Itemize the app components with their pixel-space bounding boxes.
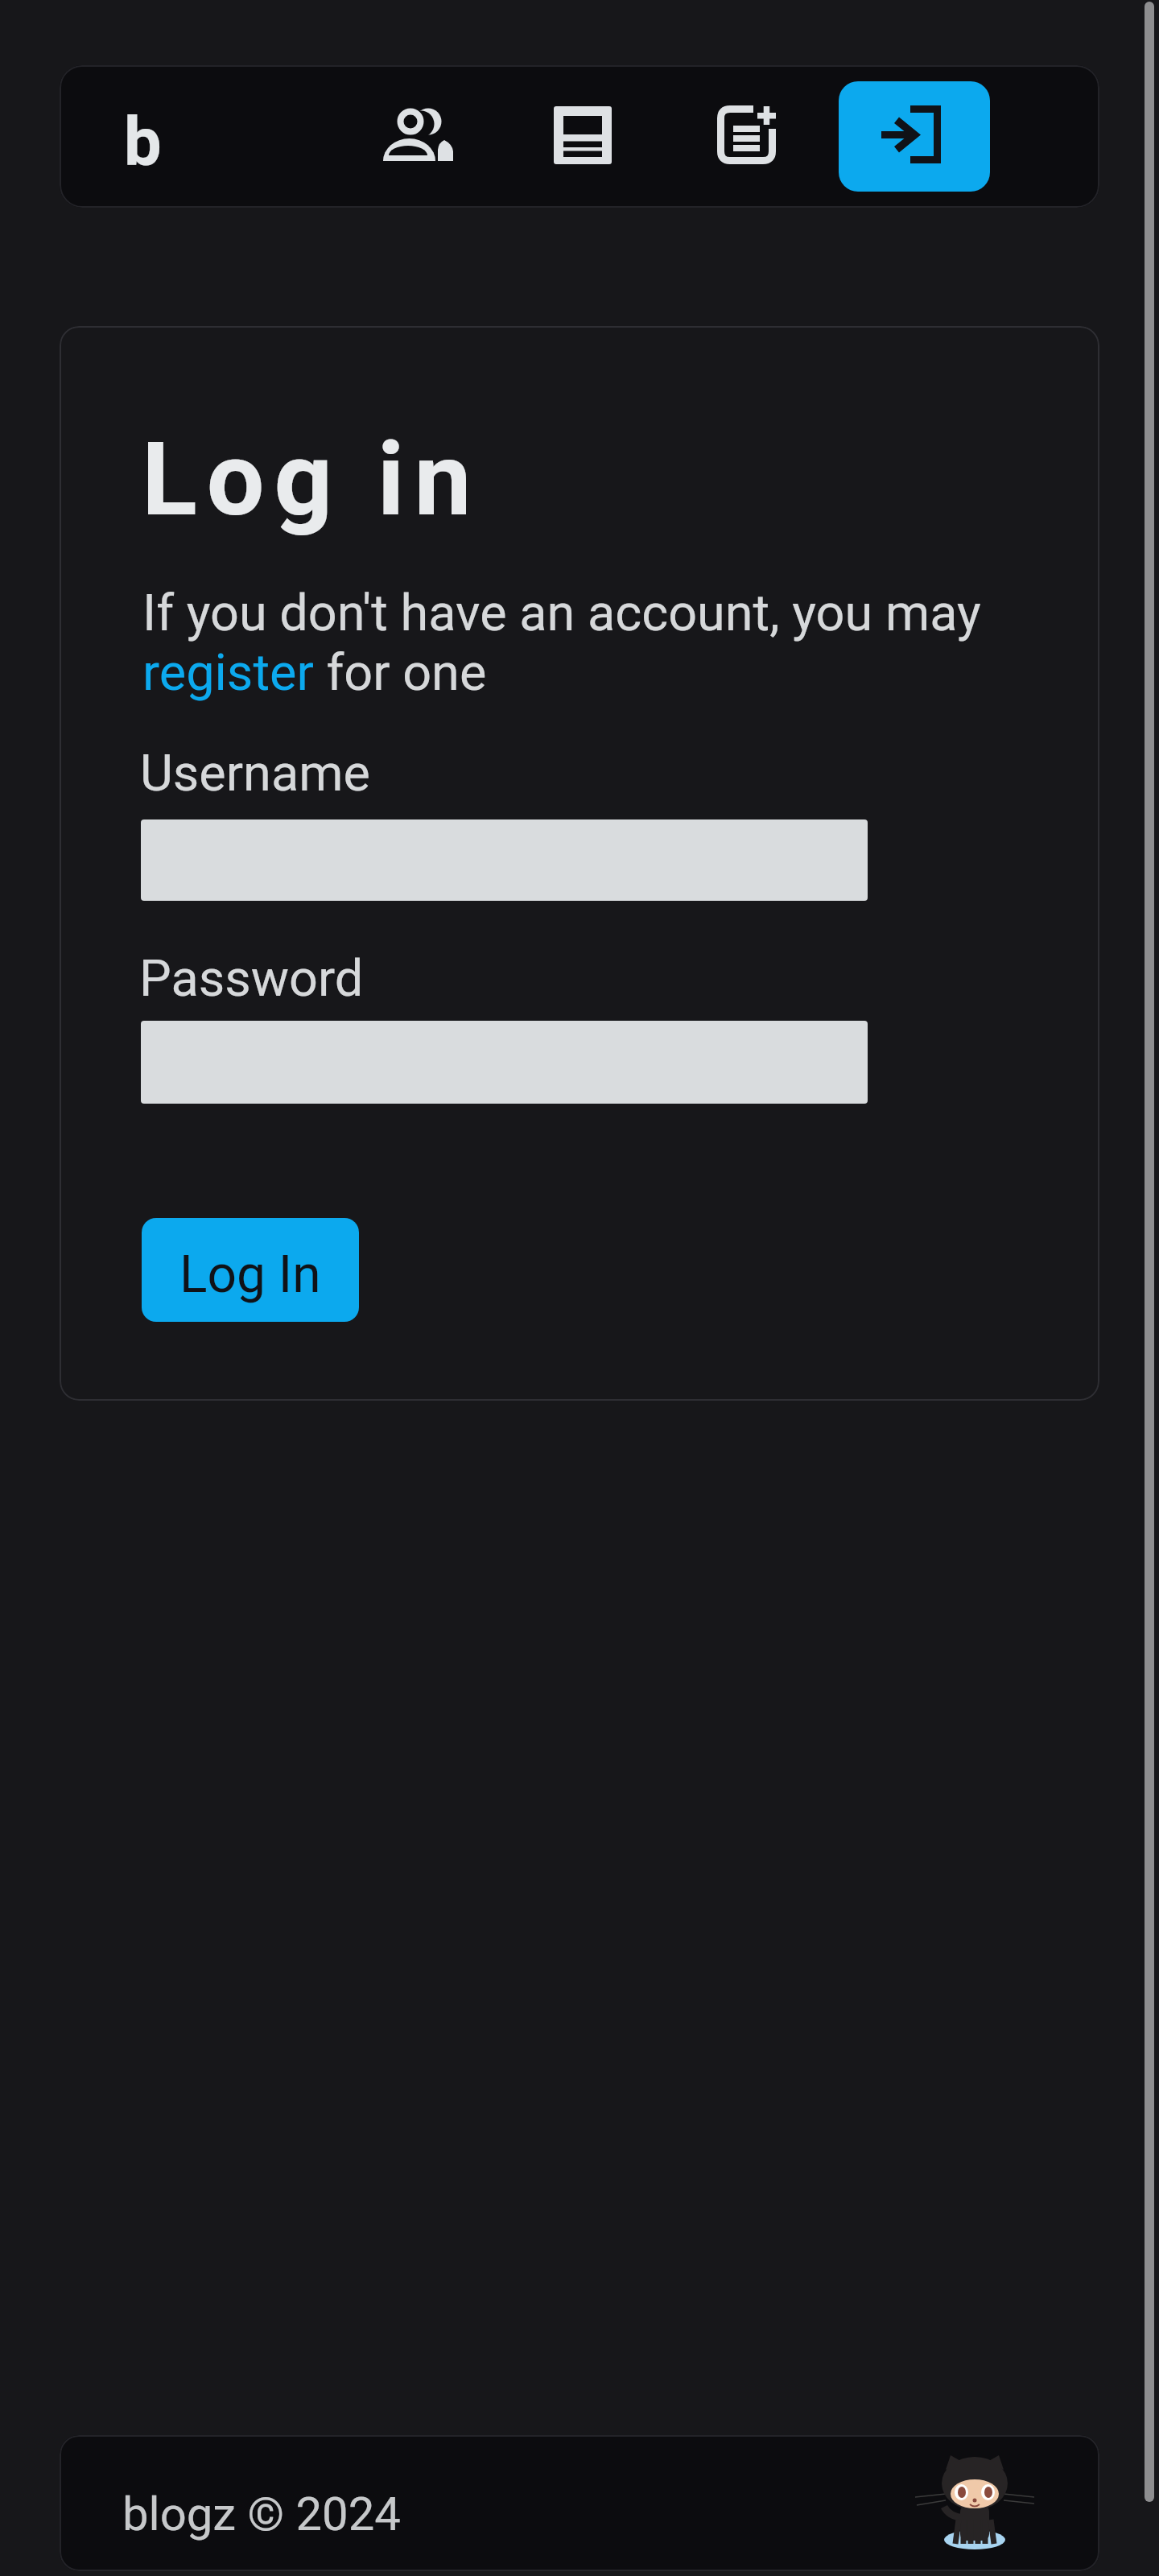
button[interactable] [699, 89, 793, 182]
staticText: b [124, 102, 162, 180]
button[interactable] [141, 819, 868, 901]
button[interactable] [372, 89, 465, 182]
button[interactable]: Log In [142, 1218, 359, 1322]
staticText: If you don't have an account, you may re… [142, 584, 981, 702]
staticText: Log in [142, 419, 481, 539]
button[interactable] [839, 81, 990, 192]
staticText: Log In [179, 1245, 321, 1305]
button[interactable] [145, 652, 318, 708]
button[interactable]: b [94, 76, 191, 205]
staticText: Password [139, 949, 364, 1009]
staticText: blogz © 2024 [122, 2487, 401, 2541]
button[interactable] [939, 2455, 1013, 2560]
button[interactable] [536, 89, 629, 182]
staticText: Username [140, 744, 370, 803]
